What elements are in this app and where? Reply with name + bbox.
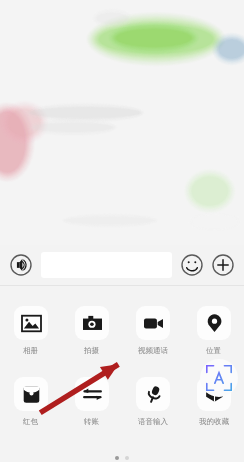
button[interactable]: 拍摄 — [61, 304, 122, 357]
staticText: 红包 — [23, 417, 38, 426]
button[interactable]: 语音输入 — [122, 375, 183, 428]
button[interactable]: 转账 — [61, 375, 122, 428]
button[interactable]: 位置 — [183, 304, 244, 357]
button[interactable]: 我的收藏 — [183, 375, 244, 428]
button[interactable]: 视频通话 — [122, 304, 183, 357]
staticText: 视频通话 — [138, 346, 168, 355]
button[interactable]: 相册 — [0, 304, 61, 357]
staticText: 我的收藏 — [199, 417, 229, 426]
staticText: 语音输入 — [138, 417, 168, 426]
staticText: 拍摄 — [84, 346, 99, 355]
staticText: 位置 — [206, 346, 221, 355]
staticText: 相册 — [23, 346, 38, 355]
button[interactable]: Emoji — [179, 252, 205, 278]
staticText: 转账 — [84, 417, 99, 426]
button[interactable]: 红包 — [0, 375, 61, 428]
button[interactable]: Voice message — [8, 252, 34, 278]
button[interactable]: AI scan assistant — [200, 359, 238, 397]
button[interactable]: More — [210, 252, 236, 278]
